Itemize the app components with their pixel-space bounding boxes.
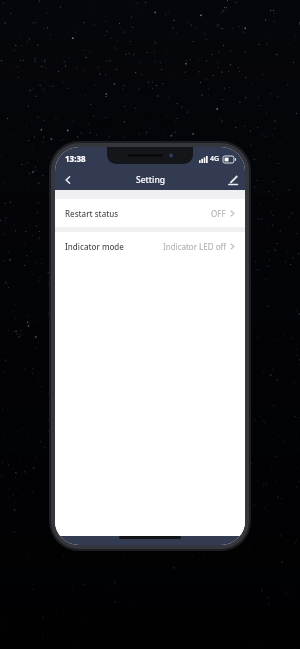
button[interactable]: Edit — [219, 169, 245, 190]
staticText: 4G — [210, 154, 220, 164]
staticText: OFF — [211, 208, 226, 219]
staticText: Restart status — [65, 208, 119, 219]
staticText: Indicator LED off — [163, 241, 226, 252]
staticText: Indicator mode — [65, 241, 124, 252]
button[interactable]: Back — [55, 169, 81, 190]
button[interactable]: Restart status — [55, 199, 245, 227]
button[interactable]: Indicator mode — [55, 232, 245, 260]
staticText: 13:38 — [65, 153, 86, 164]
staticText: Setting — [136, 174, 165, 186]
